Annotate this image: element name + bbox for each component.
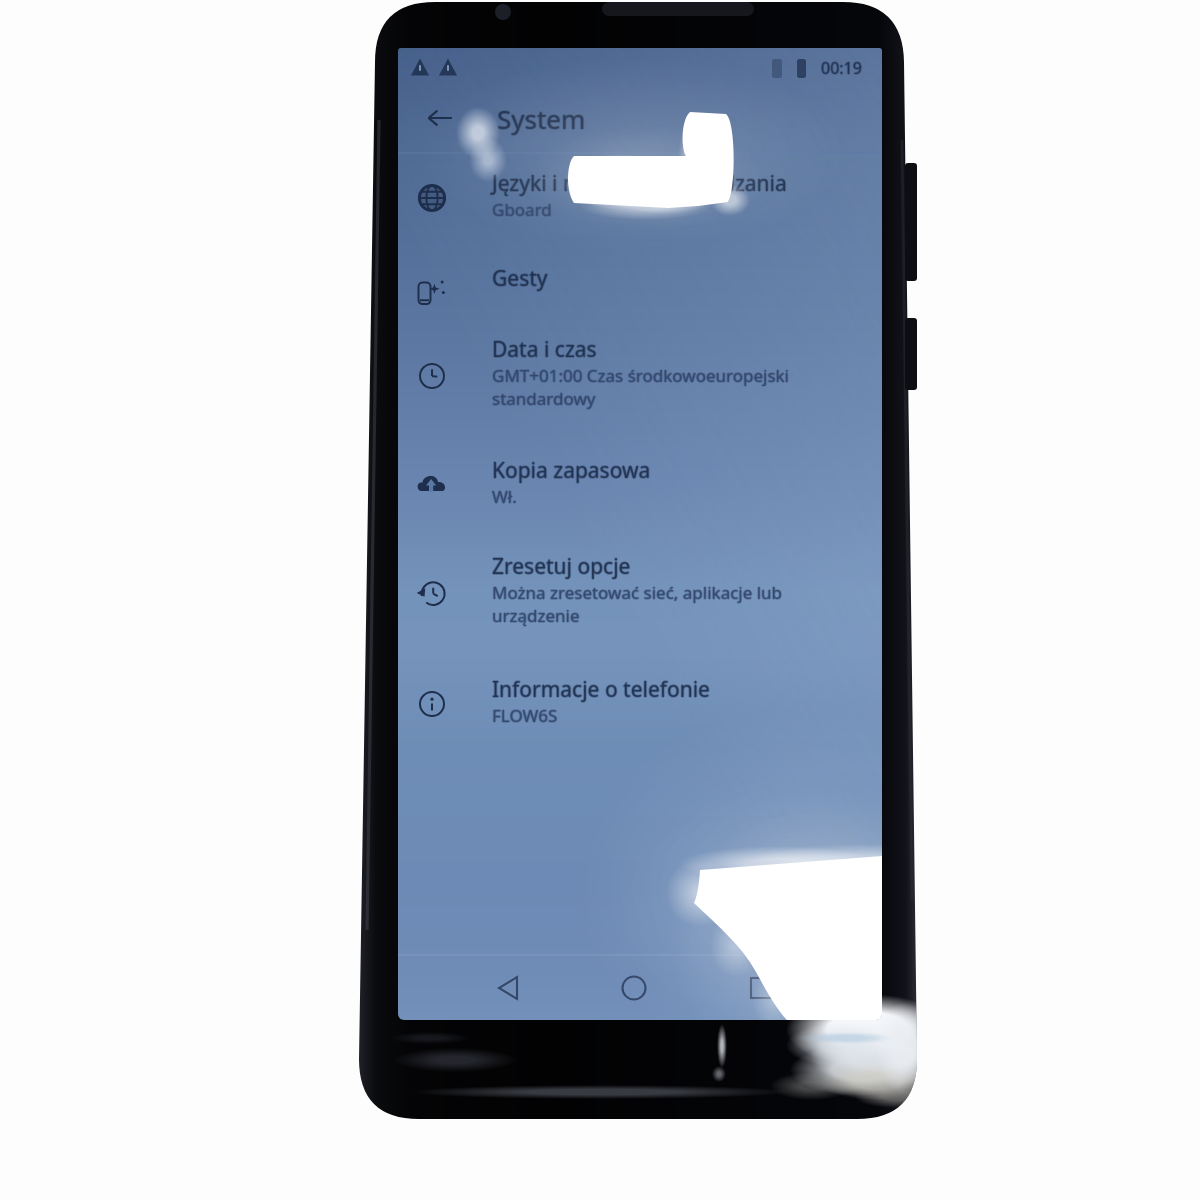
staticText: Data i czas	[491, 335, 596, 364]
staticText: System	[497, 102, 586, 137]
staticText: Wł.	[493, 485, 518, 508]
staticText: 00:19	[820, 57, 861, 79]
staticText: Gboard	[491, 198, 551, 221]
staticText: Informacje o telefonie	[491, 675, 709, 704]
staticText: standardowy	[492, 386, 596, 409]
staticText: standardowy	[492, 388, 596, 411]
button[interactable]: Home	[606, 955, 662, 1020]
staticText: Informacje o telefonie	[492, 675, 710, 704]
staticText: Gboard	[492, 199, 552, 222]
staticText: Kopia zapasowa	[491, 456, 650, 485]
staticText: FLOW6S	[492, 703, 558, 726]
staticText: System	[496, 101, 585, 136]
staticText: Zresetuj opcje	[492, 553, 631, 582]
staticText: Wł.	[491, 485, 516, 508]
button[interactable]: Recent apps	[733, 955, 789, 1020]
staticText: Gboard	[492, 198, 552, 221]
button[interactable]: Navigate up	[420, 98, 460, 138]
staticText: urządzenie	[493, 604, 581, 627]
staticText: GMT+01:00 Czas środkowoeuropejski	[492, 365, 790, 388]
staticText: GMT+01:00 Czas środkowoeuropejski	[492, 363, 790, 386]
staticText: Informacje o telefonie	[492, 676, 710, 705]
staticText: System	[497, 100, 586, 135]
staticText: Kopia zapasowa	[492, 457, 651, 486]
staticText: Języki i metody wprowadzania	[491, 169, 786, 198]
staticText: Można zresetować sieć, aplikacje lub	[492, 582, 783, 605]
staticText: GMT+01:00 Czas środkowoeuropejski	[493, 364, 791, 387]
staticText: Kopia zapasowa	[493, 456, 652, 485]
staticText: Zresetuj opcje	[493, 552, 632, 581]
staticText: Zresetuj opcje	[492, 551, 631, 580]
staticText: 00:19	[822, 57, 863, 79]
button[interactable]: Zresetuj opcje	[398, 552, 882, 640]
staticText: FLOW6S	[493, 704, 559, 727]
staticText: GMT+01:00 Czas środkowoeuropejski	[492, 364, 790, 387]
staticText: Gesty	[491, 264, 547, 293]
staticText: standardowy	[492, 387, 596, 410]
button[interactable]: Back	[478, 955, 538, 1020]
staticText: Można zresetować sieć, aplikacje lub	[492, 580, 783, 603]
staticText: Wł.	[492, 485, 517, 508]
button[interactable]: Informacje o telefonie	[398, 675, 882, 741]
staticText: Kopia zapasowa	[492, 455, 651, 484]
staticText: Gesty	[492, 263, 548, 292]
button[interactable]: Kopia zapasowa	[398, 456, 882, 522]
staticText: 00:19	[821, 57, 862, 79]
staticText: Data i czas	[493, 335, 598, 364]
staticText: 00:19	[821, 56, 862, 78]
button[interactable]: Data i czas	[398, 335, 882, 423]
staticText: Data i czas	[492, 336, 597, 365]
staticText: Zresetuj opcje	[492, 552, 631, 581]
staticText: Data i czas	[492, 335, 597, 364]
staticText: Gboard	[493, 198, 553, 221]
staticText: Wł.	[492, 486, 517, 509]
staticText: Można zresetować sieć, aplikacje lub	[491, 581, 782, 604]
staticText: Języki i metody wprowadzania	[492, 169, 787, 198]
staticText: Data i czas	[492, 334, 597, 363]
staticText: Gesty	[493, 264, 549, 293]
staticText: GMT+01:00 Czas środkowoeuropejski	[491, 364, 789, 387]
staticText: urządzenie	[491, 604, 579, 627]
staticText: Wł.	[492, 484, 517, 507]
staticText: 00:19	[821, 58, 862, 80]
staticText: Zresetuj opcje	[491, 552, 630, 581]
staticText: Języki i metody wprowadzania	[492, 170, 787, 199]
staticText: Gesty	[492, 264, 548, 293]
staticText: FLOW6S	[492, 704, 558, 727]
staticText: Języki i metody wprowadzania	[493, 169, 788, 198]
staticText: FLOW6S	[492, 705, 558, 728]
staticText: urządzenie	[492, 604, 580, 627]
staticText: standardowy	[491, 387, 595, 410]
button[interactable]: Języki i metody wprowadzania	[398, 169, 882, 235]
staticText: Kopia zapasowa	[492, 456, 651, 485]
staticText: FLOW6S	[491, 704, 557, 727]
staticText: urządzenie	[492, 603, 580, 626]
staticText: System	[498, 101, 587, 136]
staticText: Można zresetować sieć, aplikacje lub	[492, 581, 783, 604]
staticText: urządzenie	[492, 605, 580, 628]
staticText: System	[497, 101, 586, 136]
staticText: Można zresetować sieć, aplikacje lub	[493, 581, 784, 604]
staticText: Gesty	[492, 265, 548, 294]
staticText: Informacje o telefonie	[492, 674, 710, 703]
button[interactable]: Gesty	[398, 264, 882, 324]
staticText: Gboard	[492, 197, 552, 220]
staticText: Informacje o telefonie	[493, 675, 711, 704]
staticText: standardowy	[493, 387, 597, 410]
staticText: Języki i metody wprowadzania	[492, 168, 787, 197]
